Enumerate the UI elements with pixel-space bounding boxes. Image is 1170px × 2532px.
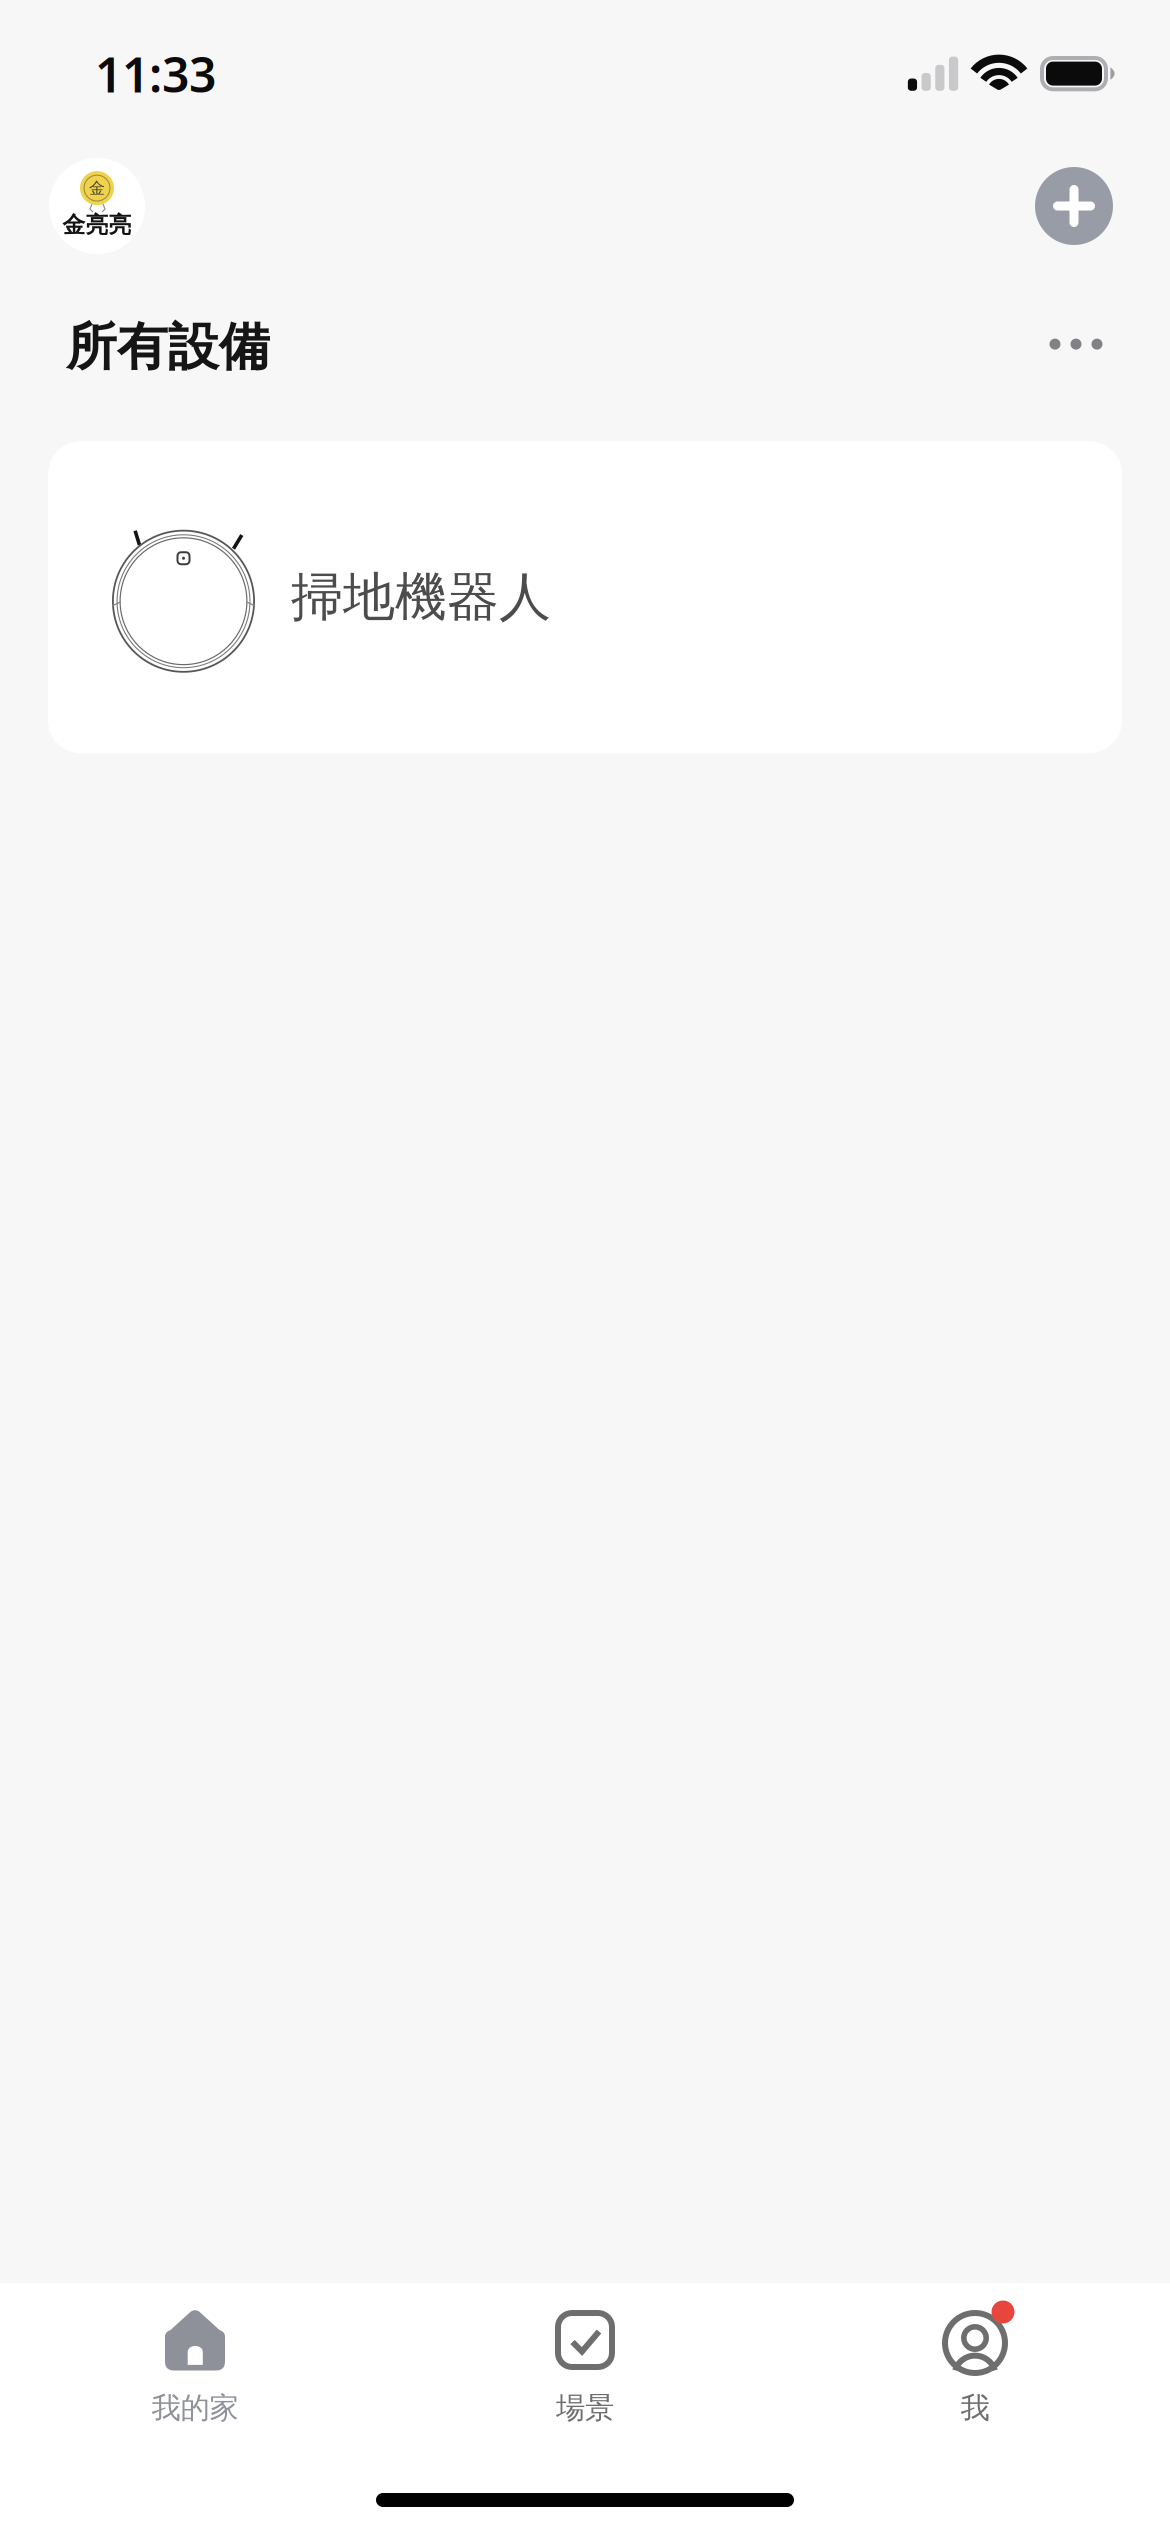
button[interactable]: 場景 [390, 2283, 780, 2446]
staticText: 金 [89, 178, 105, 198]
staticText: 所有設備 [66, 316, 270, 378]
button[interactable]: 金亮亮 home [49, 158, 145, 254]
button[interactable]: 我 [780, 2283, 1170, 2446]
staticText: 金亮亮 [62, 211, 131, 239]
staticText: 掃地機器人 [291, 565, 551, 629]
button[interactable]: More options [1030, 316, 1122, 378]
staticText: 場景 [556, 2390, 614, 2426]
button[interactable]: Add device [1035, 167, 1113, 245]
staticText: 我的家 [151, 2390, 238, 2426]
staticText: 我 [960, 2390, 989, 2426]
staticText: 11:33 [95, 42, 216, 106]
button[interactable]: 掃地機器人 [48, 441, 1122, 753]
button[interactable]: 我的家 [0, 2283, 390, 2446]
